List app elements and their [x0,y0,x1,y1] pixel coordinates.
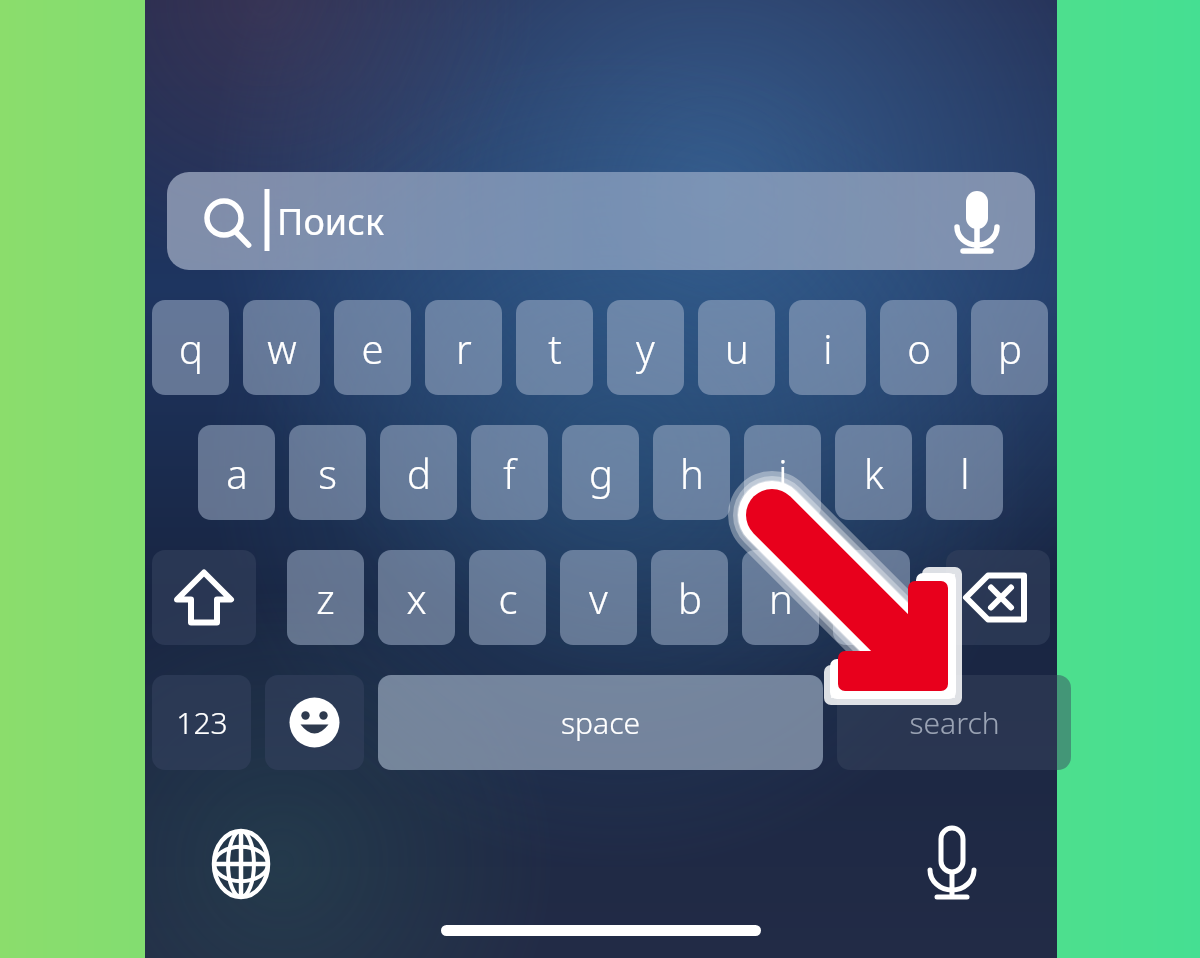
button[interactable]: s [289,425,366,520]
staticText: l [960,446,970,500]
staticText: n [769,571,793,625]
staticText: s [318,446,337,500]
button[interactable]: r [425,300,502,395]
button[interactable]: Shift [152,550,256,645]
button[interactable]: search [837,675,1071,770]
staticText: p [998,321,1022,375]
button[interactable]: o [880,300,957,395]
button[interactable]: c [469,550,546,645]
button[interactable]: y [607,300,684,395]
button[interactable]: h [653,425,730,520]
staticText: r [456,321,472,375]
button[interactable]: i [789,300,866,395]
button[interactable]: p [971,300,1048,395]
staticText: u [725,321,749,375]
button[interactable]: m [833,550,910,645]
staticText: t [548,321,562,375]
button[interactable]: z [287,550,364,645]
staticText: d [407,446,431,500]
staticText: o [907,321,931,375]
staticText: f [503,446,516,500]
button[interactable]: Change keyboard language [202,825,280,903]
staticText: m [854,571,890,625]
button[interactable]: Dictation [913,825,991,903]
button[interactable]: a [198,425,275,520]
staticText: z [316,571,335,625]
button[interactable]: g [562,425,639,520]
button[interactable]: l [926,425,1003,520]
staticText: j [778,446,788,500]
staticText: 123 [176,702,228,743]
staticText: e [361,321,384,375]
button[interactable]: q [152,300,229,395]
button[interactable]: Поиск [167,172,1035,270]
button[interactable]: d [380,425,457,520]
staticText: h [680,446,704,500]
button[interactable]: x [378,550,455,645]
staticText: search [909,702,1000,743]
button[interactable]: b [651,550,728,645]
staticText: y [636,321,655,375]
button[interactable]: n [742,550,819,645]
staticText: b [678,571,702,625]
button[interactable]: k [835,425,912,520]
staticText: space [561,702,640,743]
button[interactable]: t [516,300,593,395]
button[interactable]: u [698,300,775,395]
staticText: q [179,321,203,375]
button[interactable]: w [243,300,320,395]
button[interactable]: f [471,425,548,520]
button[interactable]: 123 [152,675,251,770]
staticText: a [226,446,248,500]
button[interactable]: v [560,550,637,645]
staticText: x [406,571,427,625]
staticText: k [864,446,884,500]
staticText: g [589,446,613,500]
staticText: Поиск [277,197,384,246]
button[interactable]: Emoji [265,675,364,770]
button[interactable]: space [378,675,823,770]
staticText: c [498,571,518,625]
button[interactable]: Backspace [946,550,1050,645]
staticText: i [823,321,833,375]
staticText: w [267,321,297,375]
button[interactable]: j [744,425,821,520]
button[interactable]: e [334,300,411,395]
staticText: v [589,571,608,625]
